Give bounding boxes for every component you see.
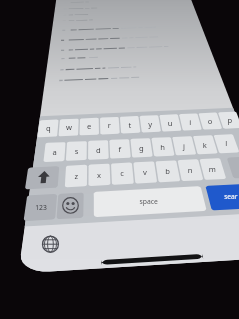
button[interactable]: Phone screen with on-screen keyboard <box>0 0 239 319</box>
